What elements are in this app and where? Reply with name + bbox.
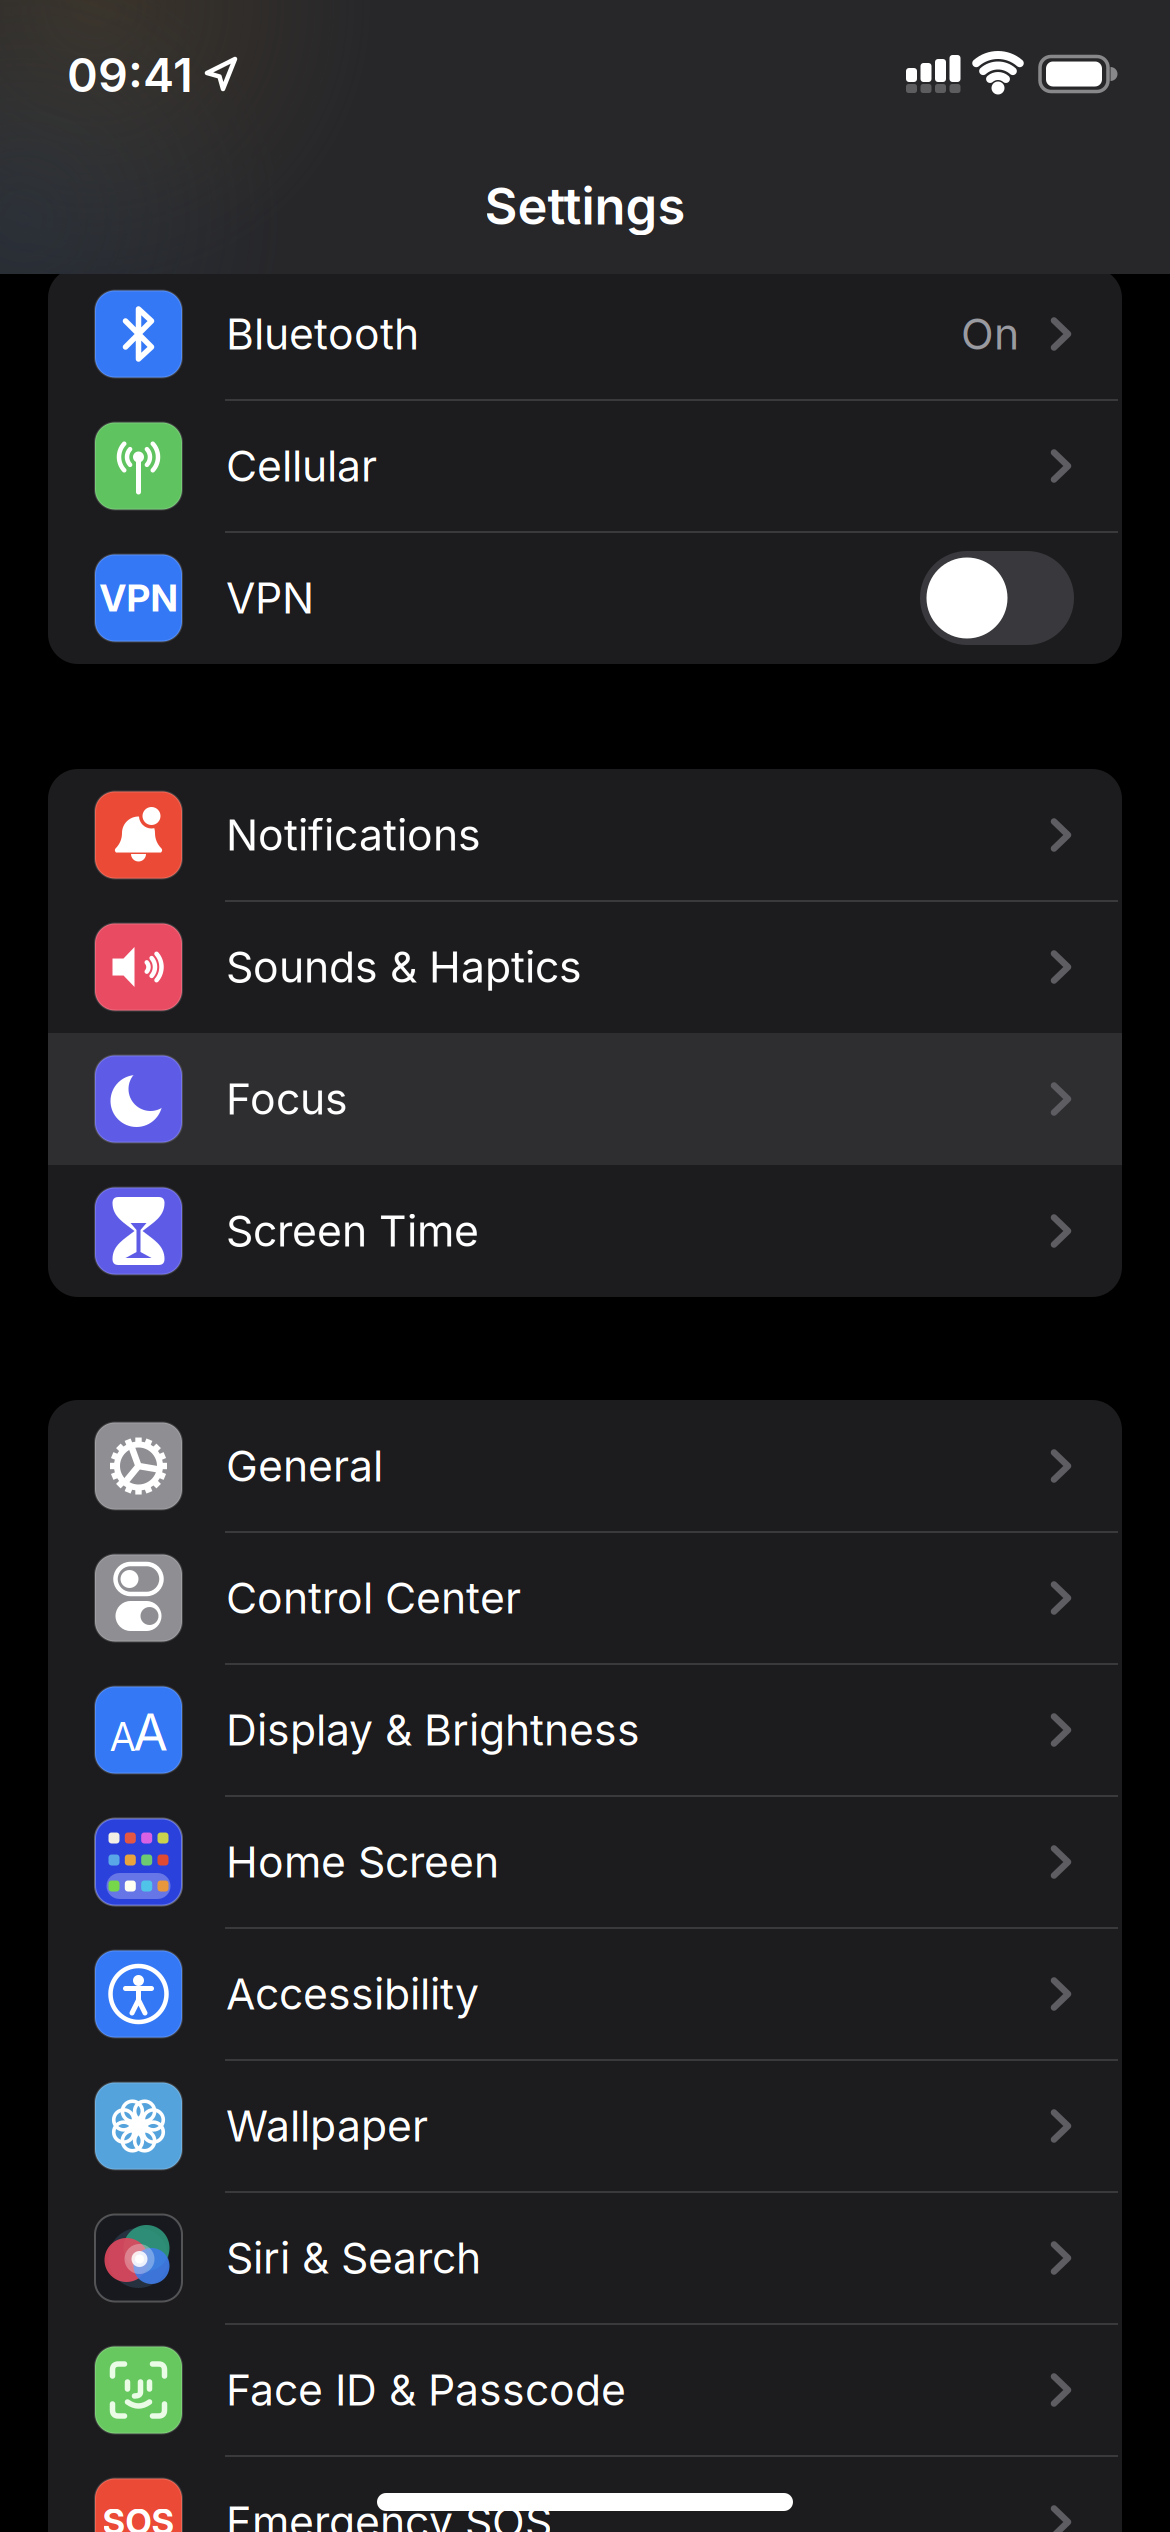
button[interactable]: Bluetooth bbox=[48, 268, 1122, 400]
button[interactable]: Wallpaper bbox=[48, 2060, 1122, 2192]
button[interactable]: Screen Time bbox=[48, 1165, 1122, 1297]
staticText: Focus bbox=[226, 1074, 348, 1124]
staticText: A bbox=[110, 1714, 135, 1760]
staticText: Wallpaper bbox=[226, 2101, 428, 2151]
staticText: Face ID & Passcode bbox=[226, 2365, 626, 2415]
button[interactable]: Siri & Search bbox=[48, 2192, 1122, 2324]
button[interactable]: Focus bbox=[48, 1033, 1122, 1165]
button[interactable]: Sounds & Haptics bbox=[48, 901, 1122, 1033]
staticText: Emergency SOS bbox=[226, 2497, 552, 2532]
button[interactable]: Home Screen bbox=[48, 1796, 1122, 1928]
button[interactable]: VPN bbox=[920, 551, 1074, 645]
staticText: Settings bbox=[484, 176, 685, 236]
staticText: Siri & Search bbox=[226, 2233, 481, 2283]
staticText: SOS bbox=[102, 2502, 174, 2532]
staticText: On bbox=[961, 309, 1019, 359]
staticText: VPN bbox=[226, 573, 314, 623]
staticText: Screen Time bbox=[226, 1206, 479, 1256]
staticText: VPN bbox=[99, 576, 177, 620]
button[interactable]: VPN bbox=[48, 532, 1122, 664]
button[interactable]: Notifications bbox=[48, 769, 1122, 901]
staticText: General bbox=[226, 1441, 383, 1491]
staticText: A bbox=[133, 1702, 168, 1762]
staticText: Home Screen bbox=[226, 1837, 499, 1887]
button[interactable]: Accessibility bbox=[48, 1928, 1122, 2060]
staticText: Sounds & Haptics bbox=[226, 942, 582, 992]
button[interactable]: SOS bbox=[48, 2456, 1122, 2532]
staticText: Notifications bbox=[226, 810, 481, 860]
button[interactable]: A bbox=[48, 1664, 1122, 1796]
staticText: 09:41 bbox=[67, 47, 193, 103]
staticText: Bluetooth bbox=[226, 309, 419, 359]
staticText: Display & Brightness bbox=[226, 1705, 640, 1755]
button[interactable]: Face ID & Passcode bbox=[48, 2324, 1122, 2456]
button[interactable]: Cellular bbox=[48, 400, 1122, 532]
button[interactable]: General bbox=[48, 1400, 1122, 1532]
staticText: Control Center bbox=[226, 1573, 521, 1623]
staticText: Accessibility bbox=[226, 1969, 479, 2019]
staticText: Cellular bbox=[226, 441, 377, 491]
button[interactable]: Control Center bbox=[48, 1532, 1122, 1664]
